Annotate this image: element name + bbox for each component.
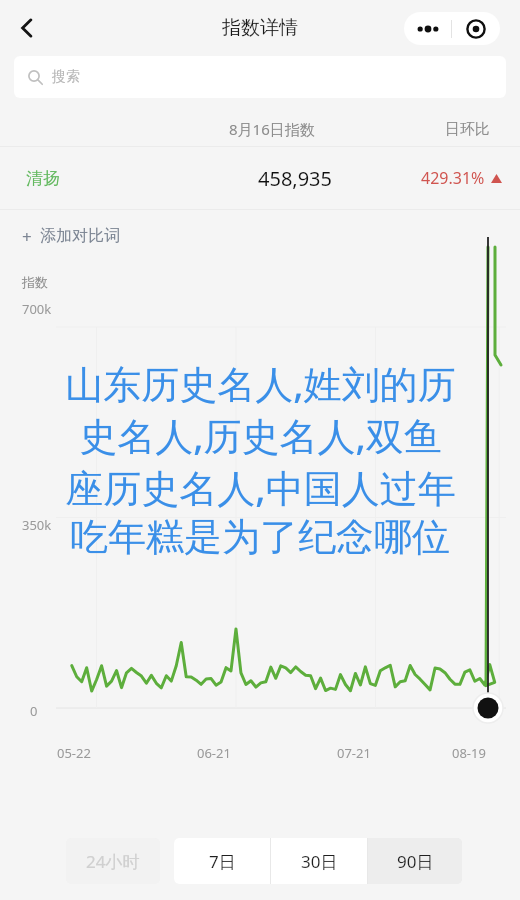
staticText: 07-21: [337, 744, 371, 762]
button[interactable]: More options: [404, 12, 451, 45]
staticText: 山东历史名人,姓刘的历: [65, 357, 456, 409]
staticText: 清扬: [26, 168, 60, 189]
staticText: 90日: [397, 850, 434, 873]
staticText: 7日: [209, 850, 236, 873]
staticText: 8月16日指数: [229, 119, 315, 139]
staticText: 06-21: [197, 744, 231, 762]
staticText: 吃年糕是为了纪念哪位: [70, 513, 450, 561]
staticText: +: [22, 225, 32, 248]
button[interactable]: 24小时: [66, 838, 160, 884]
staticText: 350k: [22, 516, 52, 534]
staticText: 添加对比词: [40, 226, 120, 246]
button[interactable]: 7日: [174, 838, 270, 884]
staticText: 429.31%: [421, 167, 485, 189]
staticText: 08-19: [452, 744, 486, 762]
button[interactable]: 90日: [368, 838, 462, 884]
button[interactable]: 搜索: [14, 56, 506, 98]
button[interactable]: Close: [452, 12, 500, 45]
staticText: 指数详情: [222, 16, 298, 40]
button[interactable]: 清扬: [0, 147, 520, 209]
button[interactable]: 30日: [271, 838, 367, 884]
staticText: 座历史名人,中国人过年: [65, 461, 456, 513]
staticText: 0: [30, 702, 38, 720]
staticText: 日环比: [445, 120, 490, 139]
staticText: 指数: [22, 274, 48, 290]
staticText: 458,935: [258, 165, 332, 192]
button[interactable]: Back: [4, 5, 50, 51]
staticText: 搜索: [52, 68, 80, 86]
staticText: 史名人,历史名人,双鱼: [79, 409, 442, 461]
staticText: 05-22: [57, 744, 91, 762]
staticText: 700k: [22, 300, 52, 318]
button[interactable]: +: [0, 210, 520, 262]
staticText: 24小时: [86, 850, 140, 873]
staticText: 30日: [301, 850, 338, 873]
